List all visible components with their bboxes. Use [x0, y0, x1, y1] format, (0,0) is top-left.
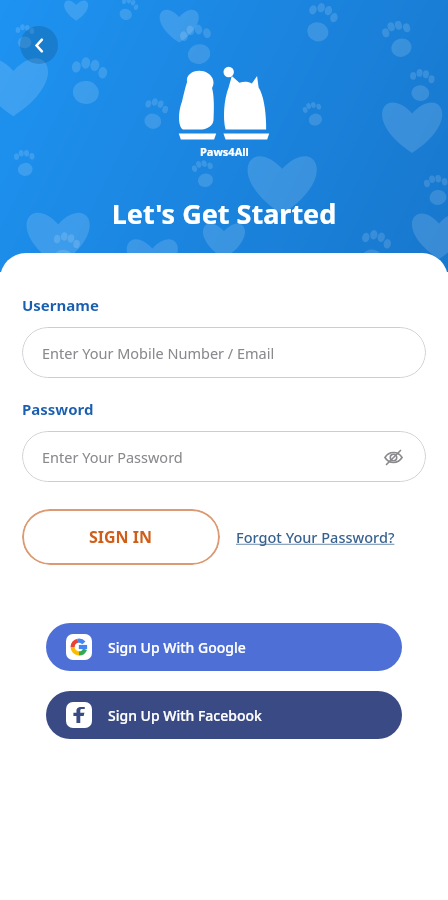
- staticText: Username: [22, 295, 99, 315]
- staticText: Sign Up With Google: [108, 638, 246, 657]
- button[interactable]: Back: [20, 26, 58, 64]
- button[interactable]: Show password: [380, 444, 406, 470]
- button[interactable]: Enter Your Password: [22, 431, 426, 482]
- button[interactable]: Sign Up With Google: [46, 623, 402, 671]
- staticText: Enter Your Password: [42, 447, 183, 467]
- button[interactable]: Enter Your Mobile Number / Email: [22, 327, 426, 378]
- staticText: Let's Get Started: [0, 195, 448, 232]
- button[interactable]: Forgot Your Password?: [236, 521, 395, 553]
- staticText: Password: [22, 399, 94, 419]
- button[interactable]: SIGN IN: [22, 509, 220, 565]
- staticText: Paws4All: [200, 144, 249, 159]
- staticText: Enter Your Mobile Number / Email: [42, 343, 275, 363]
- button[interactable]: Sign Up With Facebook: [46, 691, 402, 739]
- staticText: SIGN IN: [89, 526, 153, 548]
- staticText: Sign Up With Facebook: [108, 706, 262, 725]
- staticText: Forgot Your Password?: [236, 527, 395, 547]
